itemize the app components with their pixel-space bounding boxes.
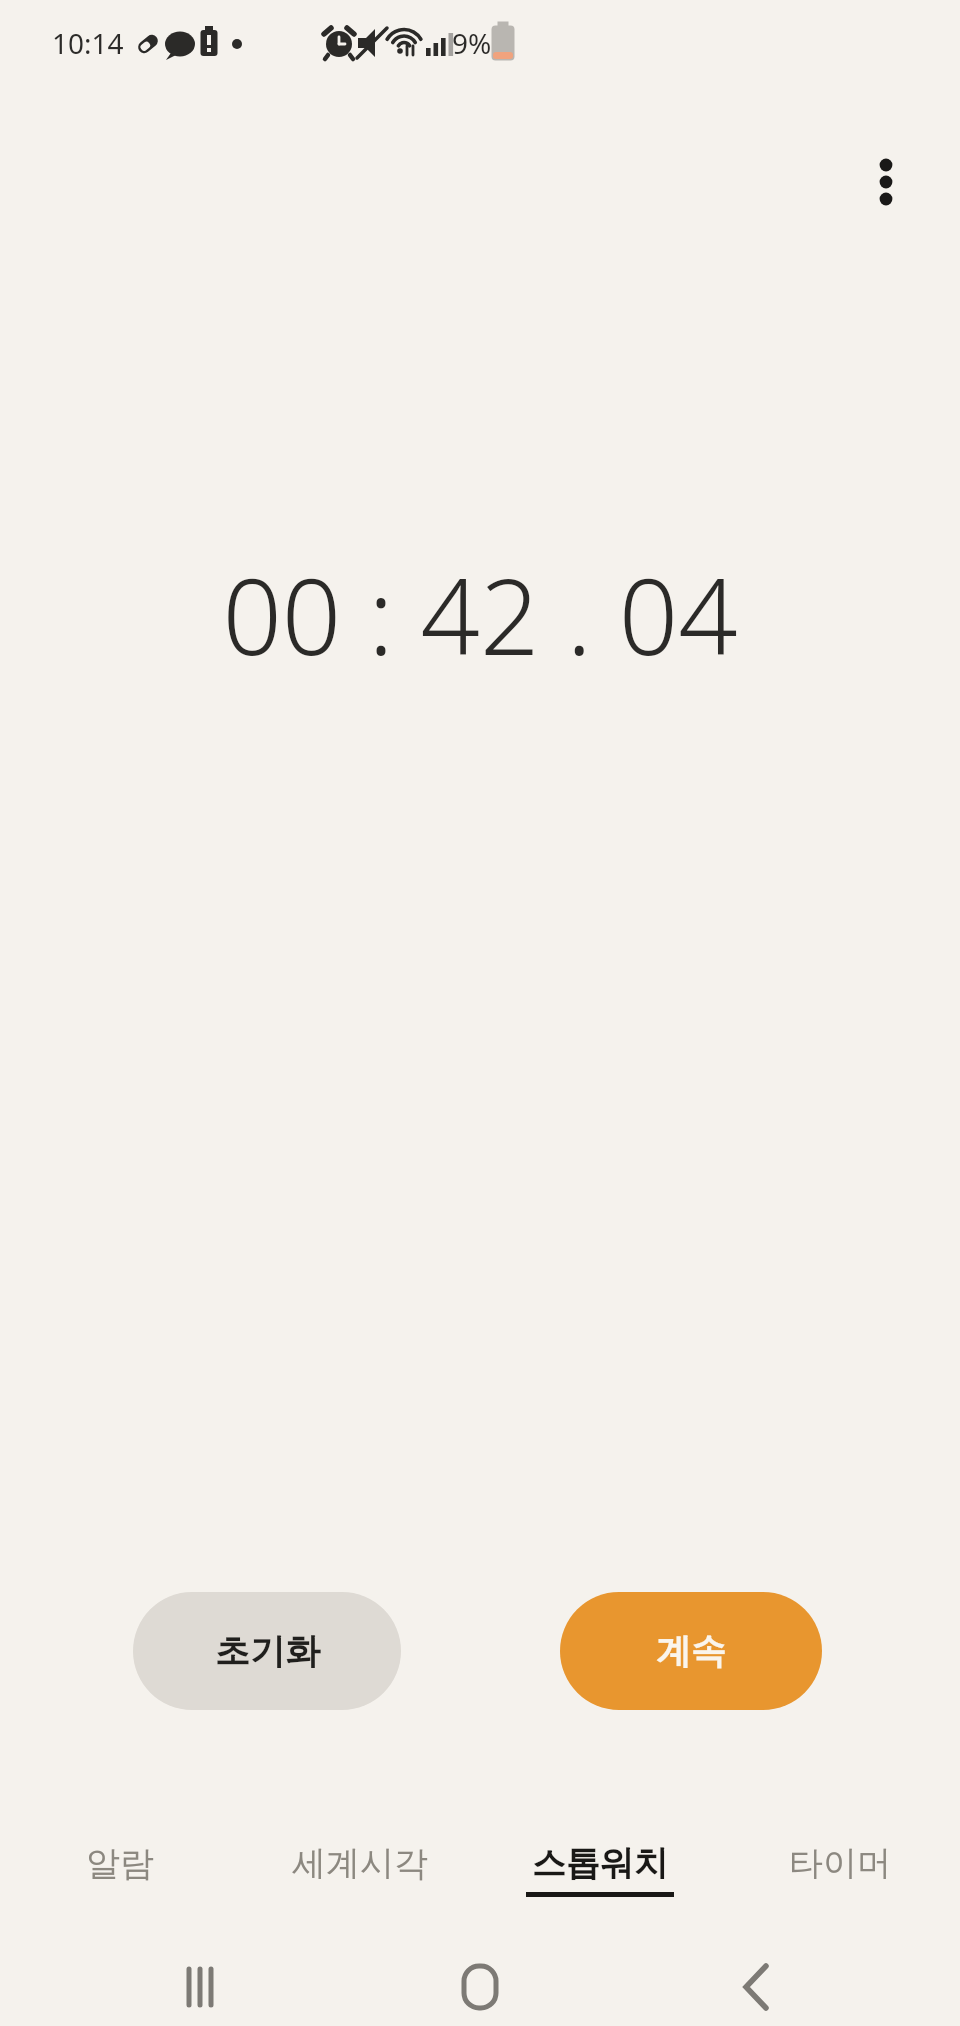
button[interactable]: 타이머 xyxy=(720,1836,960,1932)
staticText: 타이머 xyxy=(789,1842,891,1885)
staticText: 계속 xyxy=(656,1629,726,1673)
button[interactable]: Back xyxy=(676,1948,836,2026)
staticText: 10:14 xyxy=(52,24,124,62)
staticText: 알람 xyxy=(86,1842,154,1885)
button[interactable]: More options xyxy=(838,134,934,230)
button[interactable]: 스톱워치 xyxy=(480,1836,720,1932)
staticText: 9% xyxy=(452,24,492,62)
button[interactable]: 세계시각 xyxy=(240,1836,480,1932)
staticText: 초기화 xyxy=(215,1629,320,1673)
button[interactable]: 알람 xyxy=(0,1836,240,1932)
button[interactable]: Home xyxy=(400,1948,560,2026)
staticText: 00 : 42 . 04 xyxy=(222,544,738,686)
button[interactable]: 초기화 xyxy=(133,1592,401,1710)
button[interactable]: Recent apps xyxy=(120,1948,280,2026)
button[interactable]: 계속 xyxy=(560,1592,822,1710)
staticText: 스톱워치 xyxy=(532,1842,668,1885)
staticText: 세계시각 xyxy=(292,1842,428,1885)
